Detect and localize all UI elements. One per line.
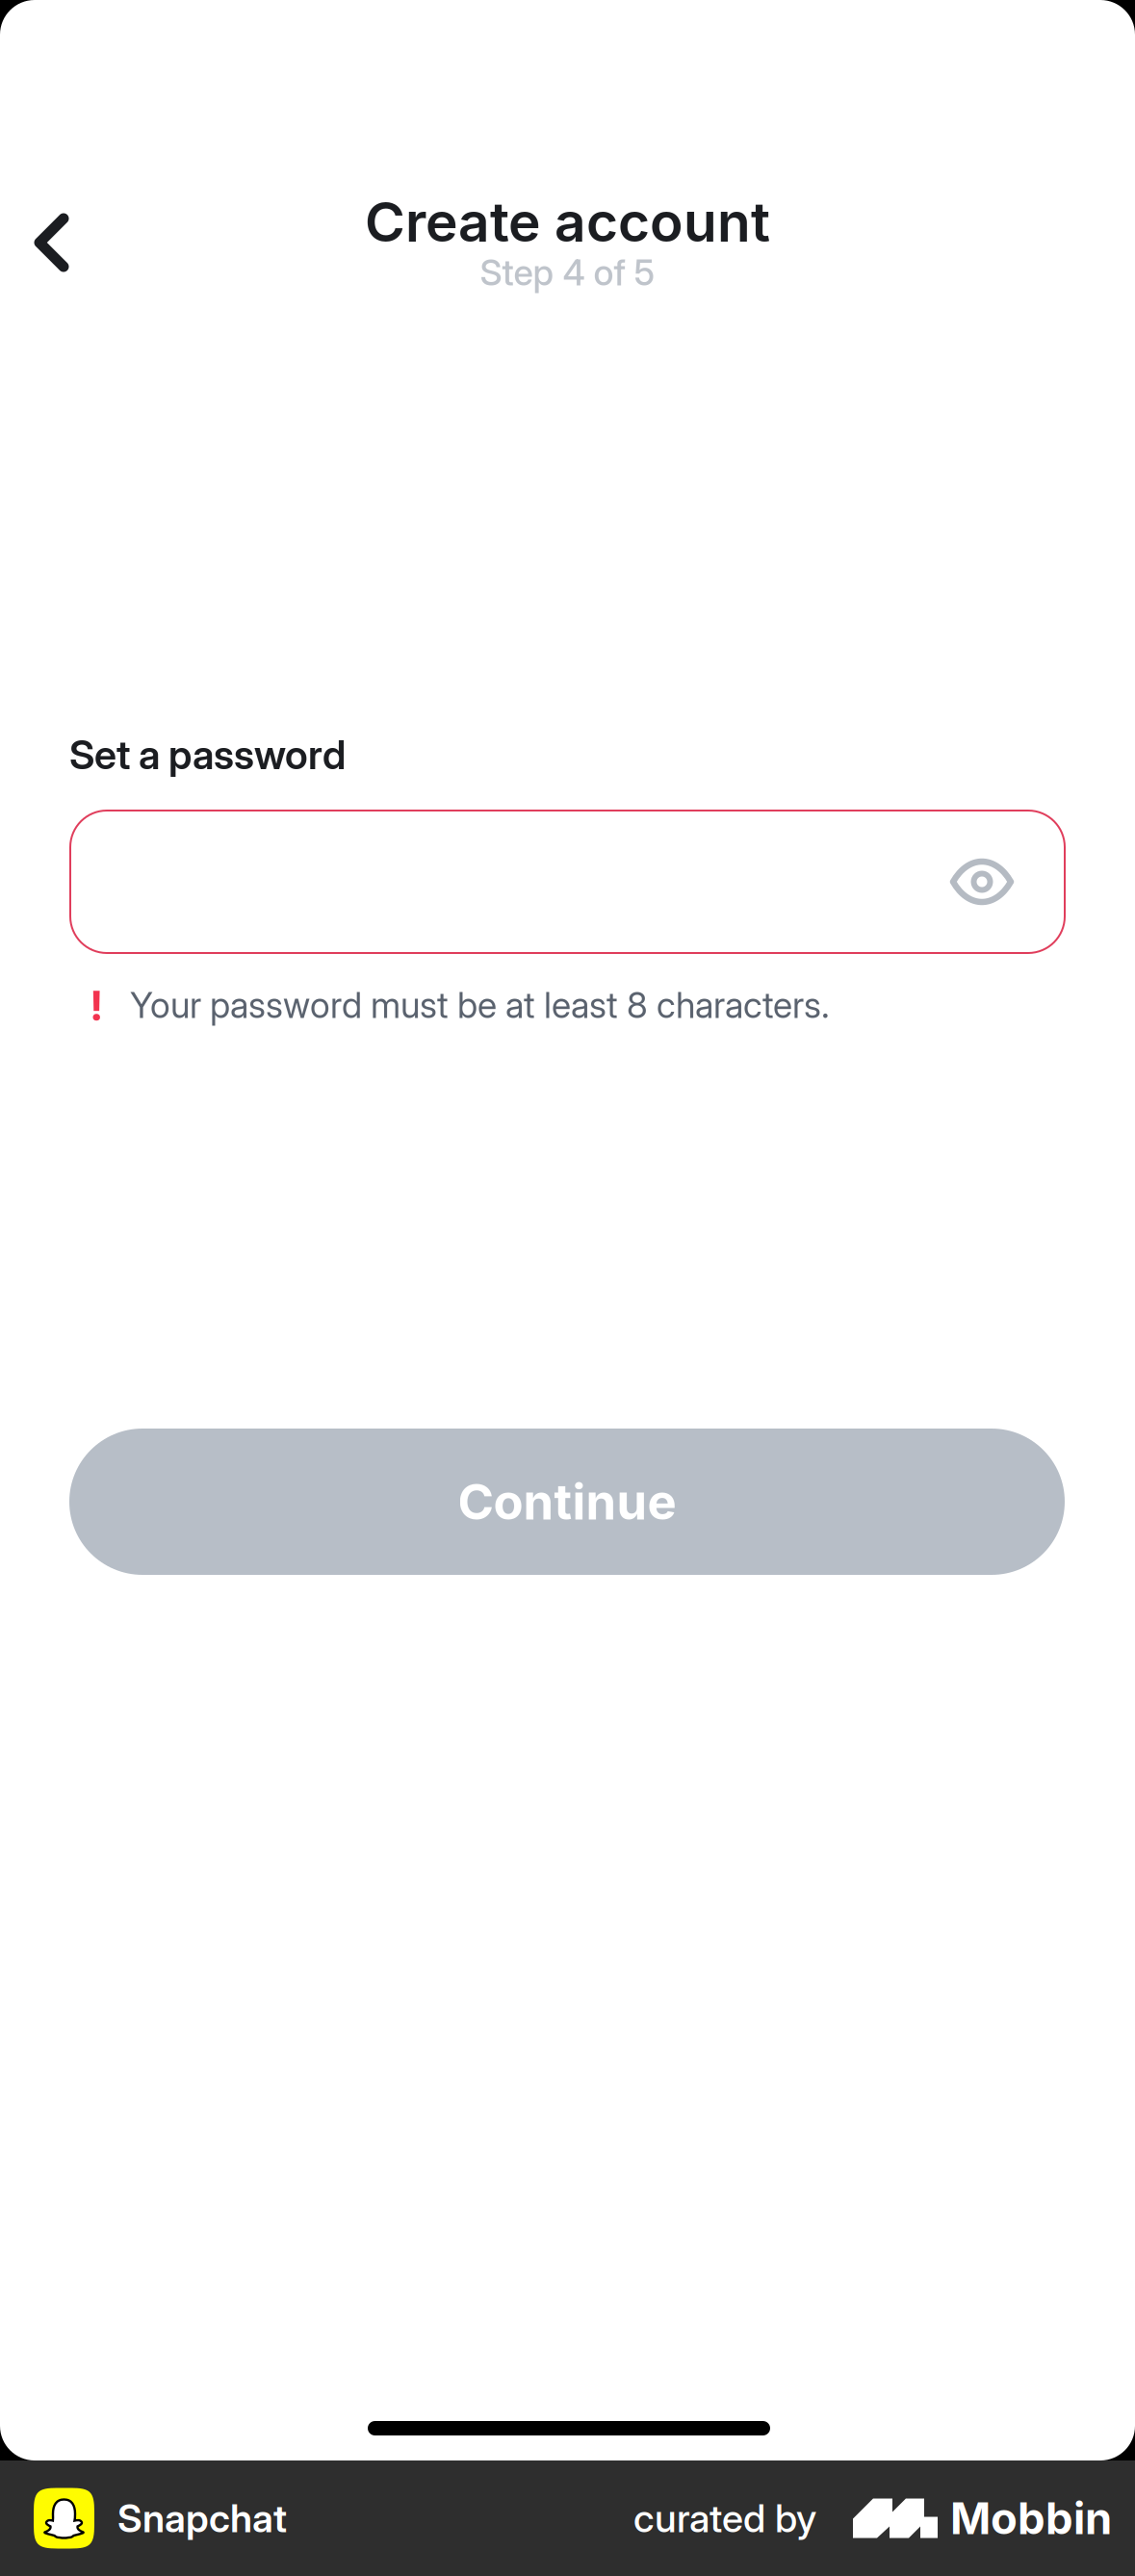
staticText: Create account <box>365 189 770 255</box>
staticText: Set a password <box>69 731 346 779</box>
staticText: Step 4 of 5 <box>480 251 655 294</box>
staticText: curated by <box>633 2495 816 2542</box>
staticText: Mobbin <box>950 2492 1112 2545</box>
staticText: Snapchat <box>117 2495 287 2542</box>
staticText: Your password must be at least 8 charact… <box>130 984 830 1027</box>
button[interactable]: Back <box>2 193 102 293</box>
staticText: ! <box>90 981 103 1031</box>
button[interactable]: Continue <box>69 1429 1065 1575</box>
staticText: Continue <box>458 1472 676 1531</box>
button[interactable]: Show password <box>932 832 1032 932</box>
button[interactable]: Password <box>70 811 1065 953</box>
